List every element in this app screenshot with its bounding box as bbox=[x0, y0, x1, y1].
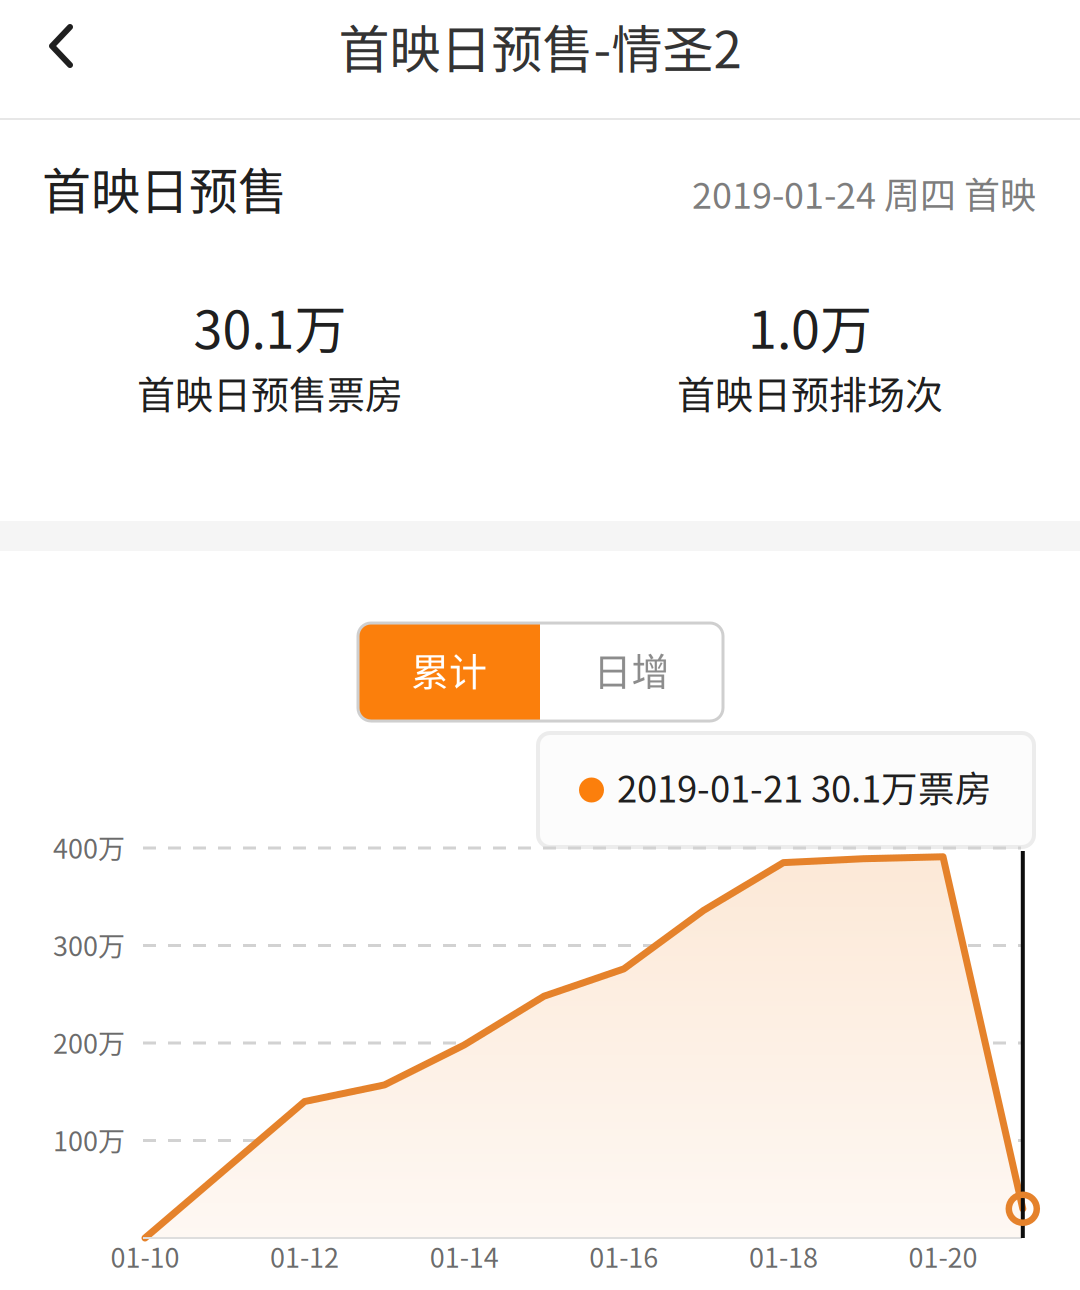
staticText: 日增 bbox=[593, 641, 669, 696]
button[interactable]: 累计 bbox=[358, 623, 540, 721]
staticText: 200万 bbox=[53, 1022, 125, 1062]
staticText: 01-10 bbox=[110, 1236, 179, 1276]
staticText: 01-20 bbox=[908, 1236, 977, 1276]
staticText: 300万 bbox=[53, 925, 125, 964]
staticText: 首映日预售-情圣2 bbox=[338, 9, 741, 83]
staticText: 累计 bbox=[411, 641, 487, 696]
staticText: 30.1万 bbox=[193, 288, 346, 364]
staticText: 400万 bbox=[53, 827, 125, 867]
staticText: 首映日预排场次 bbox=[677, 364, 943, 419]
button[interactable]: 返回 bbox=[0, 0, 107, 118]
staticText: 01-12 bbox=[270, 1236, 339, 1276]
staticText: 2019-01-21 30.1万票房 bbox=[617, 760, 992, 813]
staticText: 首映日预售票房 bbox=[137, 364, 403, 419]
staticText: 01-14 bbox=[430, 1236, 499, 1276]
staticText: 100万 bbox=[53, 1120, 125, 1159]
staticText: 2019-01-24 周四 首映 bbox=[692, 167, 1036, 219]
staticText: 首映日预售 bbox=[42, 152, 287, 223]
button[interactable]: 日增 bbox=[540, 623, 723, 721]
staticText: 01-18 bbox=[749, 1236, 818, 1276]
staticText: 01-16 bbox=[589, 1236, 658, 1276]
staticText: 1.0万 bbox=[748, 288, 872, 364]
